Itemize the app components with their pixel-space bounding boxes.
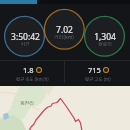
button[interactable]: Loading progress	[0, 0, 130, 4]
staticText: 평균 고도 (m)	[85, 76, 111, 83]
staticText: 시간	[20, 40, 30, 47]
staticText: 거리(km)	[54, 33, 74, 40]
staticText: 1,304	[94, 31, 116, 43]
button[interactable]: 715	[65, 61, 130, 86]
button[interactable]: 1,304	[83, 31, 127, 51]
staticText: 칼로리	[98, 40, 112, 47]
staticText: 7.02	[56, 24, 73, 36]
button[interactable]: Route map	[0, 86, 130, 130]
staticText: 1.8	[23, 65, 34, 75]
button[interactable]: 1.8	[0, 61, 64, 86]
staticText: 평균 속도 (km/h)	[16, 76, 49, 83]
staticText: 휴천리	[20, 99, 34, 106]
staticText: 715	[88, 65, 101, 75]
button[interactable]: 3:50:42	[3, 31, 47, 51]
button[interactable]: 7.02	[42, 24, 86, 44]
staticText: 3:50:42	[11, 31, 40, 43]
